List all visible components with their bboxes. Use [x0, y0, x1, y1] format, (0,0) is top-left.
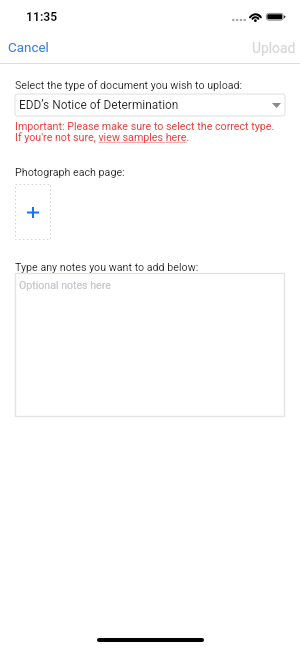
button[interactable]: Cancel	[0, 36, 59, 60]
staticText: Upload	[252, 40, 296, 56]
staticText: EDD’s Notice of Determination	[19, 98, 179, 112]
button[interactable]: Add photo	[15, 184, 51, 240]
staticText: If you're not sure, view samples here.	[15, 131, 190, 144]
button[interactable]: EDD’s Notice of Determination	[15, 94, 285, 116]
button[interactable]: Upload	[242, 36, 300, 60]
staticText: Optional notes here	[19, 279, 111, 291]
staticText: Select the type of document you wish to …	[15, 79, 243, 92]
staticText: 11:35	[26, 10, 58, 24]
staticText: Cancel	[8, 40, 49, 56]
staticText: Important: Please make sure to select th…	[15, 120, 275, 133]
button[interactable]: Optional notes here	[15, 273, 285, 417]
staticText: Type any notes you want to add below:	[15, 261, 199, 274]
staticText: Photograph each page:	[15, 166, 125, 179]
